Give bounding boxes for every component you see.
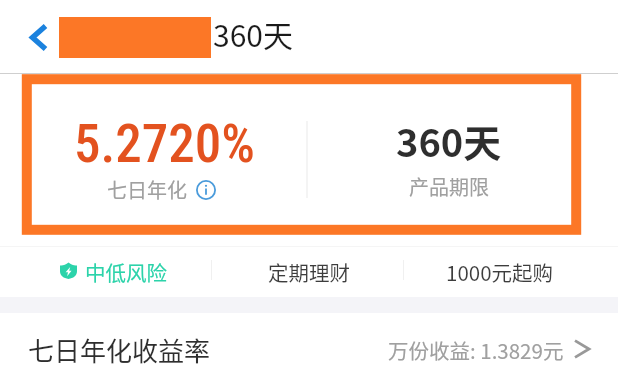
staticText: 1000元起购 xyxy=(446,257,554,287)
staticText: 万份收益: 1.3829元 xyxy=(388,335,564,365)
staticText: 360天 xyxy=(213,12,293,55)
staticText: 七日年化收益率 xyxy=(28,331,211,369)
staticText: 产品期限 xyxy=(409,172,489,201)
staticText: 360天 xyxy=(396,113,502,168)
staticText: 七日年化 xyxy=(107,175,187,204)
staticText: 中低风险 xyxy=(85,257,167,287)
staticText: 定期理财 xyxy=(268,257,350,287)
button[interactable]: Back xyxy=(18,16,60,58)
staticText: 5.2720% xyxy=(74,113,255,175)
button[interactable]: 定期理财 xyxy=(206,257,412,287)
button[interactable]: 七日年化收益率 xyxy=(0,313,618,386)
button[interactable]: 1000元起购 xyxy=(412,257,618,287)
button[interactable]: 中低风险 xyxy=(0,257,206,287)
